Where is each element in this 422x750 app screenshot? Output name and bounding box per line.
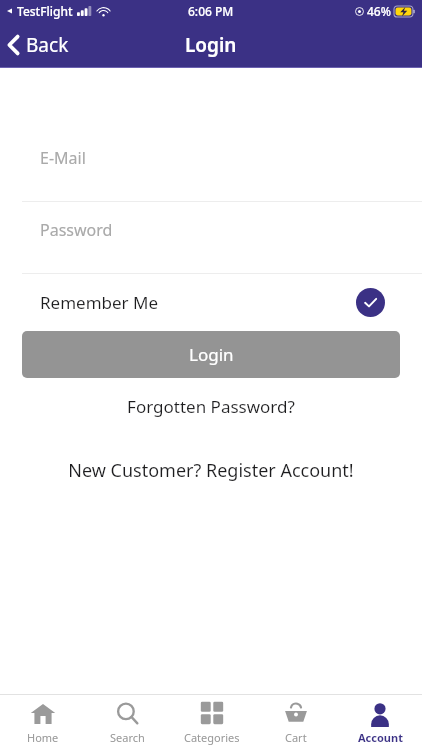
staticText: Password <box>40 219 113 241</box>
button[interactable]: Categories <box>170 695 254 750</box>
button[interactable]: Forgotten Password? <box>0 390 422 423</box>
button[interactable]: Back <box>0 26 79 64</box>
staticText: Login <box>185 32 237 58</box>
button[interactable]: Search <box>85 695 170 750</box>
button[interactable]: Home <box>0 695 85 750</box>
staticText: Home <box>27 730 59 745</box>
staticText: 46% <box>367 3 391 19</box>
staticText: Cart <box>285 730 307 745</box>
button[interactable]: Password <box>0 202 422 273</box>
staticText: E-Mail <box>40 147 86 169</box>
staticText: 6:06 PM <box>188 3 234 19</box>
staticText: Login <box>189 343 234 366</box>
button[interactable]: Account <box>338 695 422 750</box>
staticText: TestFlight <box>17 3 73 19</box>
staticText: Forgotten Password? <box>127 395 295 418</box>
staticText: Remember Me <box>40 291 159 314</box>
button[interactable]: Cart <box>254 695 338 750</box>
button[interactable]: E-Mail <box>0 130 422 201</box>
staticText: Back <box>26 32 69 58</box>
button[interactable]: Login <box>22 331 400 378</box>
staticText: Account <box>358 730 403 745</box>
button[interactable]: Remember Me <box>0 274 422 331</box>
button[interactable]: New Customer? Register Account! <box>0 453 422 488</box>
staticText: New Customer? Register Account! <box>68 458 354 483</box>
staticText: Search <box>110 730 145 745</box>
staticText: Categories <box>184 730 240 745</box>
